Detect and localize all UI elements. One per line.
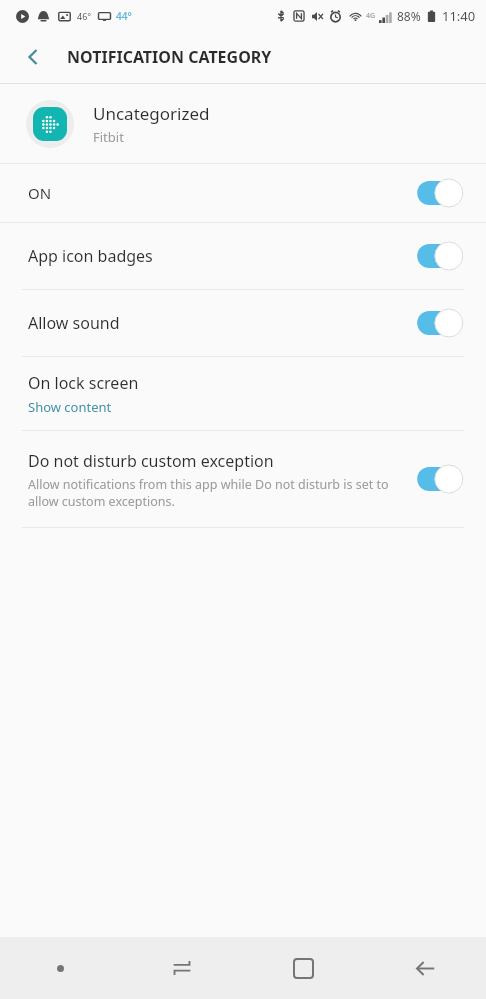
staticText: 4G (366, 11, 376, 21)
staticText: Show content (28, 398, 112, 416)
staticText: Do not disturb custom exception (28, 450, 274, 472)
button[interactable]: ON (0, 164, 486, 222)
button[interactable]: Allow sound (0, 290, 486, 356)
button[interactable]: Toggle on (412, 464, 464, 494)
button[interactable]: Toggle on (412, 178, 464, 208)
staticText: 88% (397, 8, 421, 24)
button[interactable]: Recents (121, 937, 242, 999)
button[interactable]: Assistant (0, 937, 121, 999)
staticText: 44° (116, 9, 132, 23)
button[interactable]: On lock screen (0, 357, 486, 430)
button[interactable]: Uncategorized (0, 84, 486, 163)
staticText: 11:40 (442, 7, 476, 25)
staticText: Allow sound (28, 312, 120, 334)
button[interactable]: App icon badges (0, 223, 486, 289)
staticText: 46° (77, 10, 92, 22)
staticText: NOTIFICATION CATEGORY (67, 46, 272, 68)
staticText: Allow notifications from this app while … (28, 476, 402, 509)
button[interactable]: Do not disturb custom exception (0, 431, 486, 527)
staticText: ON (28, 183, 52, 203)
button[interactable]: Back (12, 36, 54, 78)
button[interactable]: Toggle on (412, 308, 464, 338)
staticText: App icon badges (28, 245, 153, 267)
button[interactable]: Home (242, 937, 364, 999)
staticText: On lock screen (28, 372, 139, 394)
button[interactable]: Back (364, 937, 486, 999)
staticText: Uncategorized (93, 102, 210, 125)
button[interactable]: Toggle on (412, 241, 464, 271)
staticText: Fitbit (93, 128, 124, 146)
